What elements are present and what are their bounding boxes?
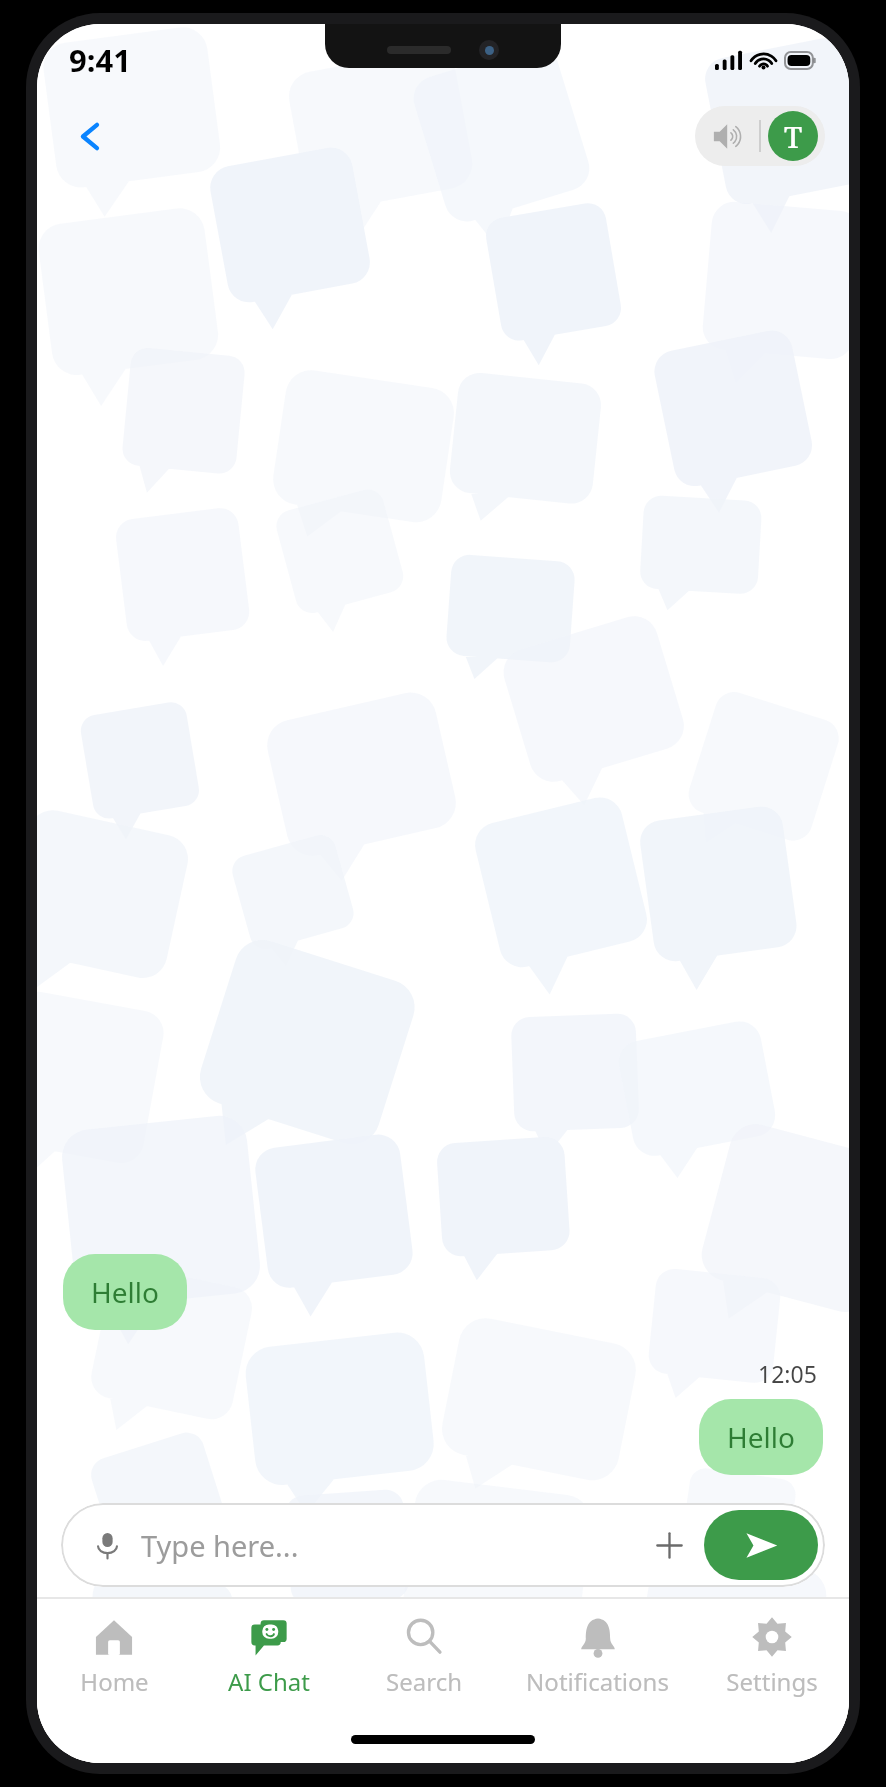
button[interactable]: Search — [346, 1599, 501, 1715]
staticText: Hello — [727, 1418, 795, 1456]
staticText: T — [784, 117, 803, 156]
staticText: 12:05 — [758, 1358, 817, 1389]
staticText: Type here... — [141, 1526, 642, 1565]
button[interactable]: Notifications — [501, 1599, 694, 1715]
button[interactable]: Sound — [695, 106, 759, 166]
staticText: AI Chat — [228, 1665, 310, 1698]
staticText: Hello — [91, 1273, 159, 1311]
button[interactable]: Back — [61, 107, 119, 165]
button[interactable]: Add attachment — [642, 1518, 696, 1572]
staticText: 9:41 — [69, 39, 131, 81]
button[interactable]: Settings — [694, 1599, 849, 1715]
button[interactable]: AI Chat — [191, 1599, 346, 1715]
staticText: Home — [80, 1665, 149, 1698]
staticText: Search — [386, 1665, 462, 1698]
button[interactable]: Home — [37, 1599, 191, 1715]
staticText: Settings — [726, 1665, 818, 1698]
button[interactable]: Voice input — [83, 1521, 131, 1569]
button[interactable]: Send — [704, 1510, 818, 1580]
button[interactable]: Text size — [768, 111, 818, 161]
button[interactable]: Hello — [63, 1254, 187, 1330]
staticText: Notifications — [526, 1665, 669, 1698]
button[interactable]: Hello — [699, 1399, 823, 1475]
